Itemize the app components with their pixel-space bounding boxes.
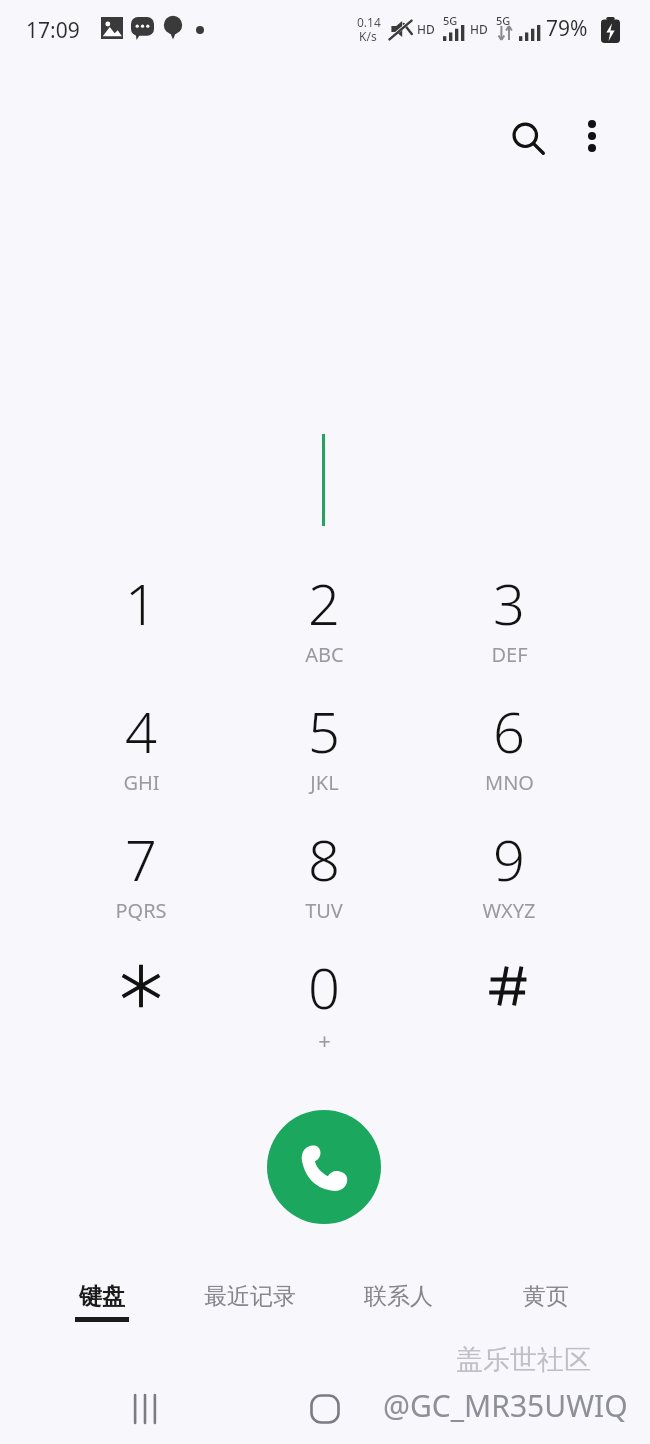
button[interactable]: Search <box>496 106 560 170</box>
staticText: HD <box>470 21 488 37</box>
staticText: 盖乐世社区 <box>456 1343 591 1377</box>
staticText: @GC_MR35UWIQ <box>383 1385 628 1426</box>
staticText: MNO <box>485 769 534 796</box>
button[interactable]: 键盘 <box>37 1282 167 1344</box>
button[interactable] <box>429 949 589 1069</box>
staticText: GHI <box>123 769 160 796</box>
button[interactable] <box>61 949 221 1069</box>
staticText: HD <box>417 21 435 37</box>
staticText: 7 <box>125 821 157 895</box>
button[interactable]: 8 <box>244 821 404 941</box>
staticText: 17:09 <box>26 16 80 45</box>
button[interactable]: 7 <box>61 821 221 941</box>
staticText: 5G <box>496 13 511 28</box>
staticText: PQRS <box>115 897 167 924</box>
staticText: DEF <box>491 641 528 668</box>
staticText: 4 <box>125 693 157 767</box>
staticText: 5 <box>308 693 340 767</box>
staticText: 黄页 <box>523 1282 569 1311</box>
button[interactable]: 4 <box>61 693 221 813</box>
staticText: JKL <box>310 769 339 796</box>
staticText: 最近记录 <box>204 1282 296 1311</box>
staticText: 3 <box>493 565 525 639</box>
button[interactable]: 联系人 <box>333 1282 463 1344</box>
button[interactable]: 1 <box>61 565 221 685</box>
staticText: 8 <box>308 821 340 895</box>
button[interactable]: 9 <box>429 821 589 941</box>
button[interactable]: 6 <box>429 693 589 813</box>
staticText: 0.14 <box>357 14 381 30</box>
button[interactable]: More options <box>562 106 622 166</box>
staticText: 6 <box>493 693 525 767</box>
button[interactable]: 0 <box>244 949 404 1069</box>
staticText: 键盘 <box>79 1282 125 1311</box>
staticText: 79% <box>546 14 588 43</box>
staticText: WXYZ <box>482 897 536 924</box>
button[interactable]: 黄页 <box>481 1282 611 1344</box>
button[interactable]: Recent apps <box>110 1382 180 1436</box>
button[interactable]: Call <box>267 1110 381 1224</box>
button[interactable]: 5 <box>244 693 404 813</box>
staticText: + <box>318 1025 331 1055</box>
staticText: K/s <box>359 28 377 44</box>
staticText: 9 <box>493 821 525 895</box>
staticText: TUV <box>305 897 343 924</box>
button[interactable]: 2 <box>244 565 404 685</box>
button[interactable]: Home <box>290 1382 360 1436</box>
staticText: 5G <box>443 13 458 28</box>
staticText: 1 <box>125 565 157 639</box>
staticText: 联系人 <box>364 1282 433 1311</box>
staticText: 2 <box>308 565 340 639</box>
staticText: ABC <box>305 641 344 668</box>
button[interactable]: 3 <box>429 565 589 685</box>
staticText: 0 <box>308 949 340 1023</box>
button[interactable]: 最近记录 <box>185 1282 315 1344</box>
